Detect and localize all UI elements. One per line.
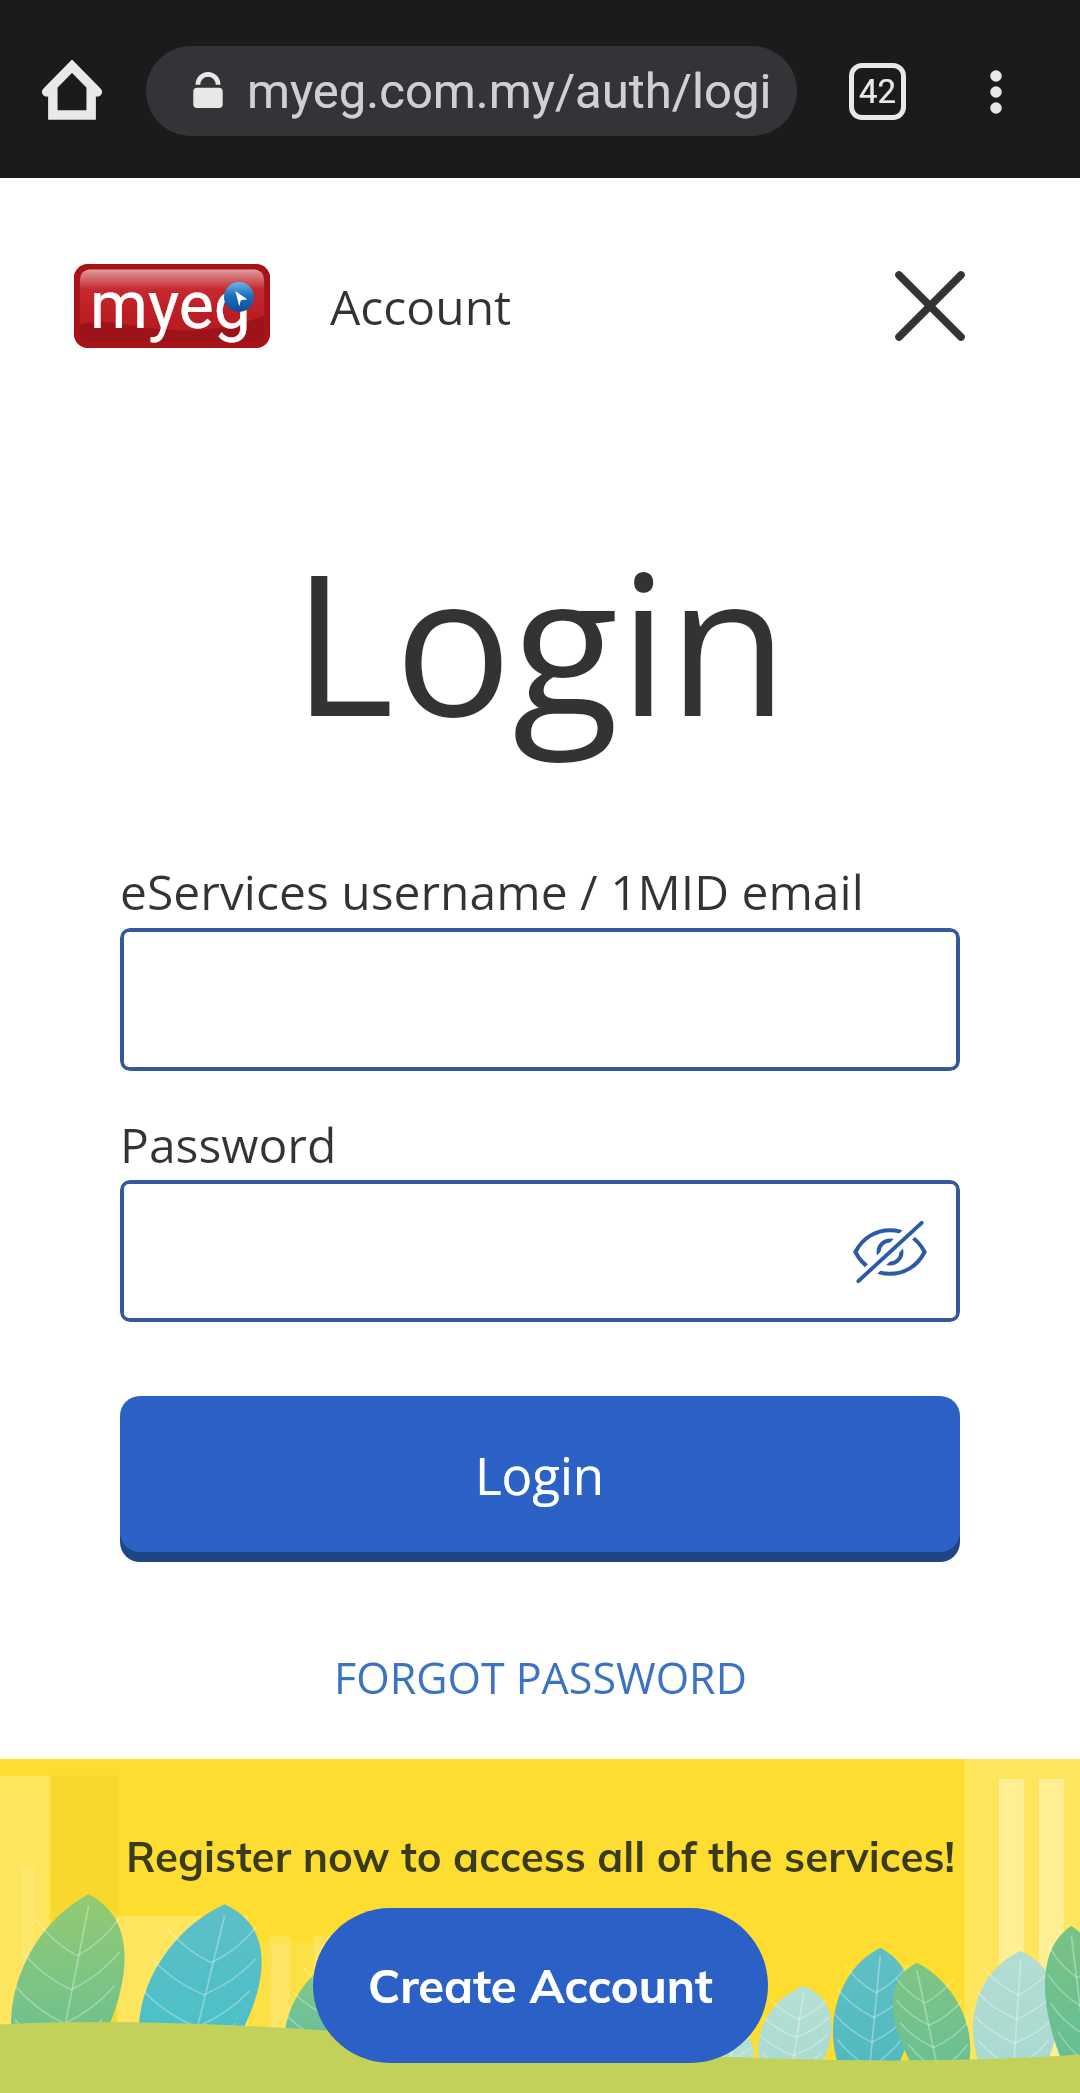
button[interactable]: Login xyxy=(120,1396,960,1552)
staticText: myeg.com.my/auth/logi xyxy=(247,63,772,120)
button[interactable]: myeg.com.my/auth/logi xyxy=(146,46,797,136)
staticText: Create Account xyxy=(368,1956,713,2015)
button[interactable]: Create Account xyxy=(313,1908,768,2063)
button[interactable]: Show password xyxy=(120,1180,960,1322)
button[interactable]: Close xyxy=(875,251,985,361)
staticText: Login xyxy=(292,507,789,767)
button[interactable]: Tabs, 42 open xyxy=(829,43,926,140)
button[interactable]: Home xyxy=(22,42,122,142)
button[interactable]: FORGOT PASSWORD xyxy=(320,1638,761,1717)
staticText: Account xyxy=(330,274,512,339)
button[interactable] xyxy=(120,928,960,1071)
button[interactable]: More options xyxy=(947,43,1044,140)
button[interactable]: Show password xyxy=(842,1204,938,1300)
staticText: Register now to access all of the servic… xyxy=(126,1830,955,1883)
staticText: 42 xyxy=(859,72,897,111)
staticText: Password xyxy=(120,1112,337,1177)
staticText: Login xyxy=(475,1440,605,1509)
button[interactable]: myeg home xyxy=(74,264,270,348)
staticText: FORGOT PASSWORD xyxy=(334,1648,747,1707)
staticText: myeg xyxy=(90,267,251,344)
staticText: eServices username / 1MID email xyxy=(120,859,864,924)
